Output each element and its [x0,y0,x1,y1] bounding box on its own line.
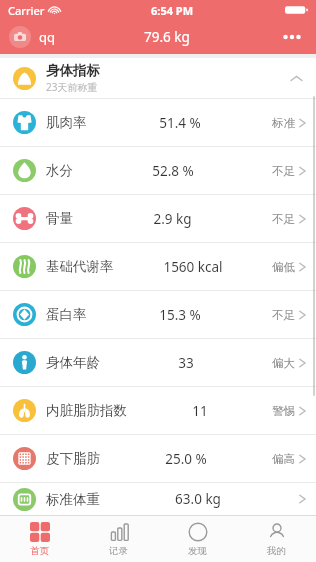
staticText: 79.6 kg [144,28,190,46]
staticText: 不足 [272,308,295,322]
staticText: Carrier [8,3,45,18]
button[interactable]: 肌肉率 [0,99,316,147]
button[interactable]: 身体年龄 [0,339,316,387]
staticText: 6:54 PM [151,3,194,18]
button[interactable]: 我的 [237,516,316,562]
button[interactable]: 发现 [158,516,237,562]
staticText: 偏高 [272,452,295,466]
button[interactable]: 皮下脂肪 [0,435,316,483]
button[interactable]: 内脏脂肪指数 [0,387,316,435]
button[interactable]: 记录 [79,516,158,562]
staticText: 警惕 [272,404,295,418]
button[interactable]: Profile photo [9,26,31,48]
button[interactable]: 身体指标 [0,58,316,99]
staticText: 偏大 [272,356,295,370]
button[interactable]: 标准体重 [0,483,316,515]
button[interactable]: 基础代谢率 [0,243,316,291]
staticText: 25.0 % [165,450,207,468]
button[interactable]: 蛋白率 [0,291,316,339]
staticText: 身体年龄 [46,354,100,371]
button[interactable]: 骨量 [0,195,316,243]
staticText: 基础代谢率 [46,258,114,275]
staticText: 骨量 [46,210,73,227]
staticText: 1560 kcal [163,258,223,276]
staticText: qq [39,28,55,46]
staticText: 身体指标 [46,62,100,79]
button[interactable]: 首页 [0,516,79,562]
staticText: 标准体重 [46,491,100,508]
staticText: 发现 [188,545,207,557]
staticText: 2.9 kg [153,210,192,228]
staticText: 皮下脂肪 [46,450,100,467]
staticText: 11 [192,402,208,420]
staticText: 52.8 % [152,162,194,180]
staticText: 33 [178,354,194,372]
staticText: 51.4 % [159,114,201,132]
staticText: 不足 [272,164,295,178]
staticText: 肌肉率 [46,114,87,131]
staticText: 内脏脂肪指数 [46,402,127,419]
staticText: 15.3 % [159,306,201,324]
staticText: 63.0 kg [175,490,221,508]
staticText: 水分 [46,162,73,179]
staticText: 偏低 [272,260,295,274]
staticText: 我的 [267,545,286,557]
staticText: 23天前称重 [46,80,98,94]
staticText: 记录 [109,545,128,557]
staticText: 蛋白率 [46,306,87,323]
button[interactable]: More options [279,24,305,50]
button[interactable]: 水分 [0,147,316,195]
staticText: 标准 [272,116,295,130]
staticText: 首页 [30,545,49,557]
staticText: 不足 [272,212,295,226]
